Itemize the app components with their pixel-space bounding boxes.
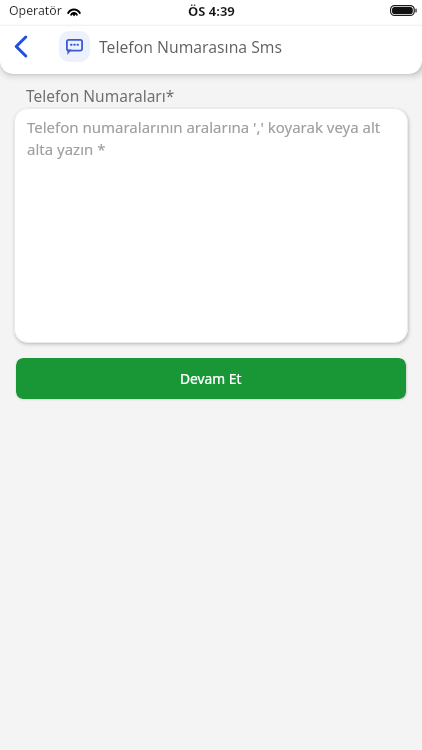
- staticText: Devam Et: [180, 369, 242, 388]
- staticText: Telefon Numarasına Sms: [99, 36, 283, 57]
- staticText: Operatör: [9, 2, 62, 19]
- button[interactable]: Back: [0, 26, 42, 67]
- button[interactable]: Telefon numaralarının aralarına ',' koya…: [14, 108, 408, 343]
- button[interactable]: Devam Et: [16, 358, 406, 399]
- staticText: Telefon numaralarının aralarına ',' koya…: [27, 117, 395, 160]
- staticText: ÖS 4:39: [188, 2, 235, 20]
- staticText: Telefon Numaraları*: [26, 85, 175, 106]
